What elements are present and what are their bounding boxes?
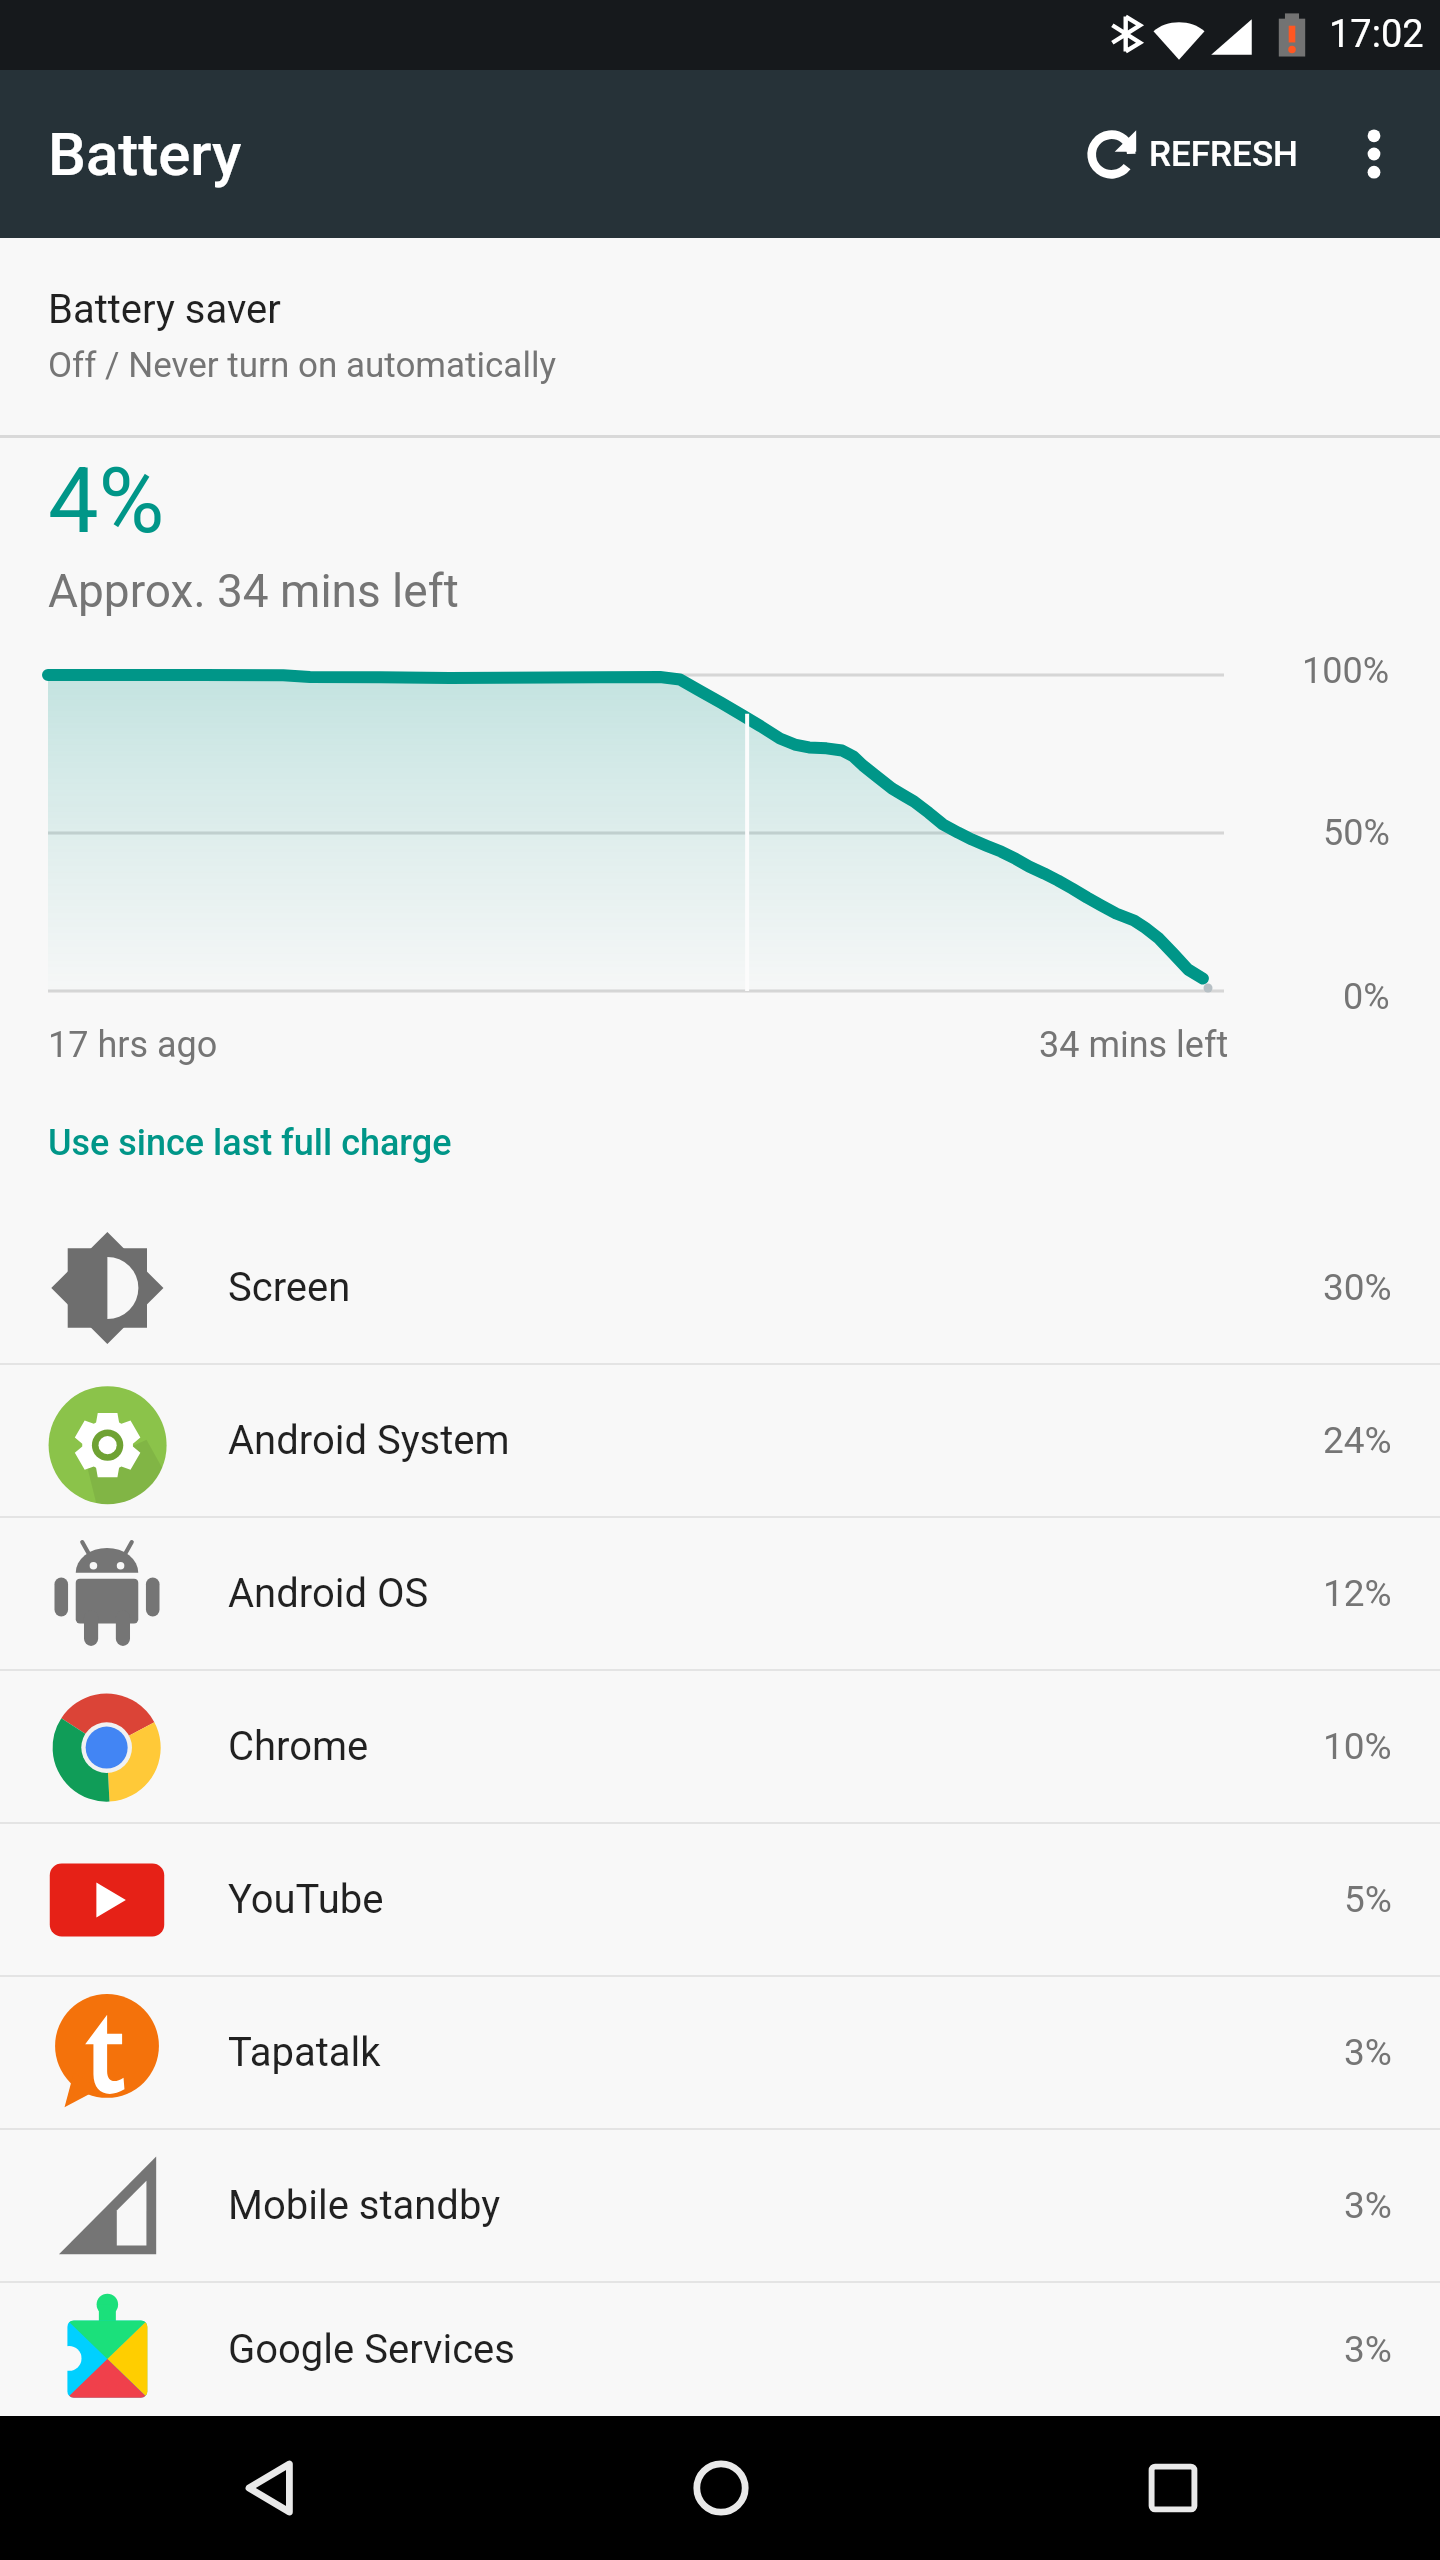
staticText: 0% xyxy=(1343,976,1390,1018)
staticText: Off / Never turn on automatically xyxy=(48,345,556,386)
button[interactable]: Mobile standby xyxy=(0,2130,1440,2281)
staticText: 50% xyxy=(1323,812,1390,854)
button[interactable]: Android System xyxy=(0,1365,1440,1516)
button[interactable]: Home xyxy=(656,2416,786,2560)
staticText: 10% xyxy=(1323,1725,1392,1768)
button[interactable]: Google Services xyxy=(0,2283,1440,2416)
staticText: Android OS xyxy=(228,1570,429,1617)
button[interactable]: Use since last full charge xyxy=(0,1040,1440,1212)
staticText: 24% xyxy=(1323,1419,1392,1462)
staticText: Chrome xyxy=(228,1723,369,1770)
button[interactable]: Chrome xyxy=(0,1671,1440,1822)
staticText: 4% xyxy=(48,449,165,554)
staticText: Screen xyxy=(228,1264,351,1311)
staticText: 17:02 xyxy=(1329,12,1424,57)
staticText: Use since last full charge xyxy=(48,1122,452,1164)
staticText: Approx. 34 mins left xyxy=(48,564,459,618)
staticText: 12% xyxy=(1323,1572,1392,1615)
button[interactable]: More options xyxy=(1312,92,1436,216)
button[interactable]: Screen xyxy=(0,1212,1440,1363)
staticText: Battery saver xyxy=(48,286,281,333)
staticText: Android System xyxy=(228,1417,510,1464)
button[interactable]: Back xyxy=(204,2416,334,2560)
staticText: Battery xyxy=(48,119,242,189)
staticText: 3% xyxy=(1344,2031,1392,2074)
button[interactable]: Tapatalk xyxy=(0,1977,1440,2128)
staticText: 30% xyxy=(1323,1266,1392,1309)
staticText: 17 hrs ago xyxy=(48,1024,218,1066)
button[interactable]: YouTube xyxy=(0,1824,1440,1975)
button[interactable]: Battery saver xyxy=(0,238,1440,435)
staticText: Google Services xyxy=(228,2326,515,2373)
button[interactable]: Android OS xyxy=(0,1518,1440,1669)
staticText: 34 mins left xyxy=(1039,1024,1229,1066)
staticText: 100% xyxy=(1302,650,1390,692)
button[interactable]: Recent apps xyxy=(1108,2416,1238,2560)
staticText: Mobile standby xyxy=(228,2182,501,2229)
staticText: 3% xyxy=(1344,2184,1392,2227)
staticText: 3% xyxy=(1344,2328,1392,2371)
staticText: 5% xyxy=(1344,1878,1392,1921)
button[interactable]: REFRESH xyxy=(1055,98,1312,211)
staticText: REFRESH xyxy=(1149,134,1298,175)
staticText: YouTube xyxy=(228,1876,384,1923)
staticText: Tapatalk xyxy=(228,2029,381,2076)
